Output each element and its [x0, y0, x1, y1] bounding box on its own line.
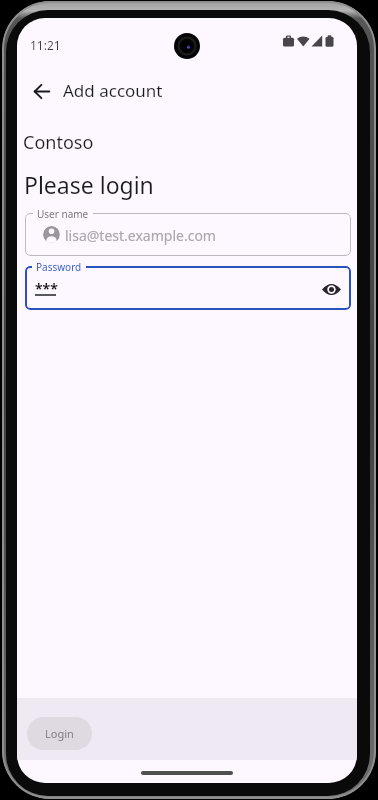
button[interactable]: ***: [25, 266, 351, 310]
staticText: 11:21: [30, 37, 61, 53]
button[interactable]: [25, 74, 59, 108]
staticText: User name: [37, 207, 89, 221]
button[interactable]: Login: [27, 717, 92, 750]
staticText: lisa@test.example.com: [65, 226, 216, 245]
staticText: Add account: [63, 79, 163, 102]
staticText: ***: [35, 279, 58, 298]
staticText: Contoso: [23, 130, 94, 155]
staticText: Password: [36, 260, 82, 274]
button[interactable]: lisa@test.example.com: [25, 213, 351, 256]
staticText: Please login: [24, 169, 154, 200]
staticText: Login: [45, 726, 74, 741]
